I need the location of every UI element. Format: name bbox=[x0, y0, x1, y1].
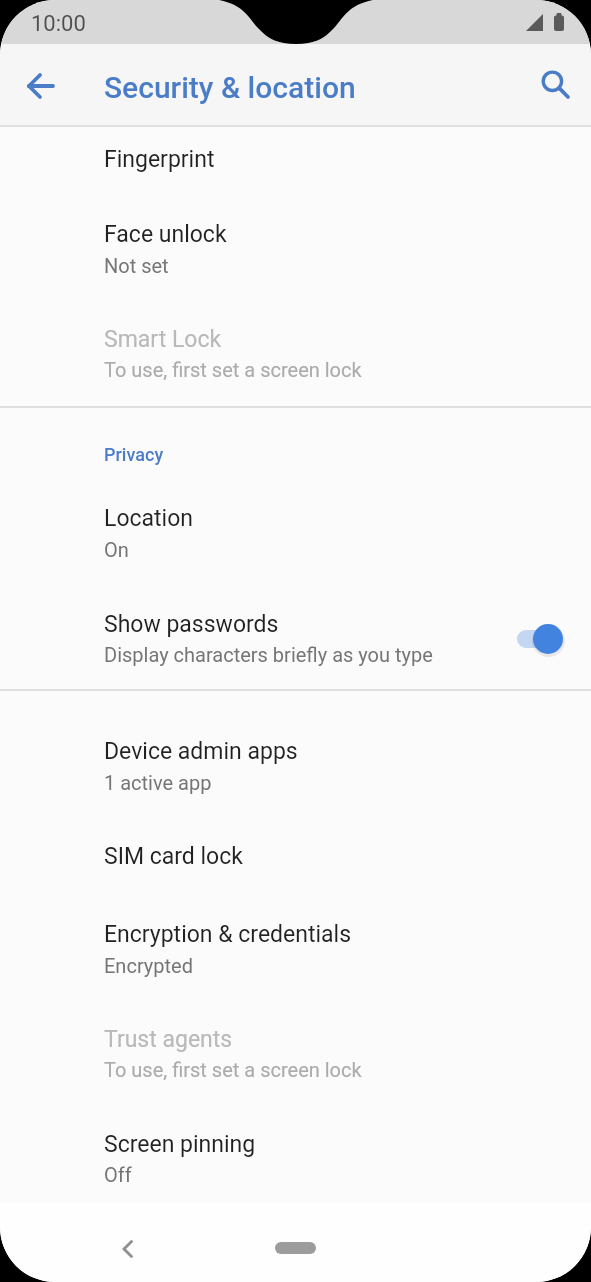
staticText: 10:00 bbox=[31, 11, 86, 37]
button[interactable] bbox=[275, 1242, 316, 1254]
staticText: 1 active app bbox=[104, 771, 212, 794]
staticText: Encryption & credentials bbox=[104, 921, 352, 948]
button[interactable]: Show passwords bbox=[0, 586, 591, 690]
button[interactable]: Device admin apps bbox=[0, 713, 591, 818]
button[interactable]: Trust agents bbox=[0, 1001, 591, 1106]
button[interactable]: SIM card lock bbox=[0, 818, 591, 888]
staticText: Fingerprint bbox=[104, 146, 215, 173]
staticText: To use, first set a screen lock bbox=[104, 1058, 362, 1081]
button[interactable]: Encryption & credentials bbox=[0, 896, 591, 1001]
staticText: Display characters briefly as you type bbox=[104, 643, 433, 666]
staticText: Screen pinning bbox=[104, 1131, 256, 1158]
staticText: SIM card lock bbox=[104, 843, 243, 870]
staticText: Location bbox=[104, 505, 193, 532]
button[interactable]: Face unlock bbox=[0, 196, 591, 301]
button[interactable] bbox=[104, 1225, 152, 1273]
staticText: Smart Lock bbox=[104, 326, 222, 353]
staticText: Off bbox=[104, 1163, 132, 1186]
button[interactable]: Screen pinning bbox=[0, 1106, 591, 1203]
staticText: Show passwords bbox=[104, 611, 279, 638]
staticText: On bbox=[104, 538, 129, 561]
staticText: Not set bbox=[104, 254, 169, 277]
staticText: Trust agents bbox=[104, 1026, 233, 1053]
button[interactable] bbox=[530, 60, 578, 108]
staticText: Encrypted bbox=[104, 954, 193, 977]
button[interactable] bbox=[17, 62, 65, 110]
button[interactable]: Fingerprint bbox=[0, 126, 591, 196]
button[interactable]: Location bbox=[0, 480, 591, 585]
staticText: Security & location bbox=[104, 70, 356, 105]
staticText: Privacy bbox=[104, 444, 164, 465]
button[interactable]: Smart Lock bbox=[0, 301, 591, 406]
staticText: Device admin apps bbox=[104, 738, 298, 765]
staticText: To use, first set a screen lock bbox=[104, 358, 362, 381]
staticText: Face unlock bbox=[104, 221, 227, 248]
